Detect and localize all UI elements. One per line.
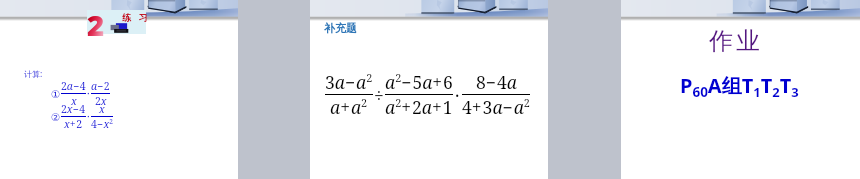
- staticText: 2x: [95, 94, 107, 108]
- staticText: 4−x2: [91, 117, 113, 131]
- staticText: ·: [87, 110, 90, 124]
- staticText: ②: [51, 111, 61, 123]
- staticText: 4+3a−a2: [462, 95, 530, 119]
- staticText: x+2: [64, 117, 83, 131]
- staticText: ÷: [374, 83, 384, 107]
- staticText: 2: [87, 6, 105, 45]
- staticText: ①: [51, 88, 61, 100]
- staticText: 8−4a: [476, 70, 517, 94]
- staticText: x: [71, 94, 77, 108]
- staticText: 计算:: [24, 68, 43, 79]
- button[interactable]: 练习 插图: [87, 10, 146, 34]
- staticText: a−2: [91, 79, 110, 93]
- staticText: a2+2a+1: [385, 95, 453, 119]
- staticText: a2−5a+6: [385, 70, 453, 94]
- staticText: x: [99, 102, 105, 116]
- staticText: ·: [87, 87, 90, 101]
- staticText: 补充题: [324, 21, 357, 35]
- staticText: 3a−a2: [325, 70, 373, 94]
- staticText: 作业: [709, 26, 763, 56]
- staticText: a+a2: [330, 95, 368, 119]
- staticText: 2a−4: [61, 79, 86, 93]
- staticText: ·: [455, 83, 460, 107]
- staticText: 练 习: [122, 11, 150, 23]
- staticText: P60A组T1T2T3: [680, 72, 799, 101]
- staticText: 2x−4: [61, 102, 86, 116]
